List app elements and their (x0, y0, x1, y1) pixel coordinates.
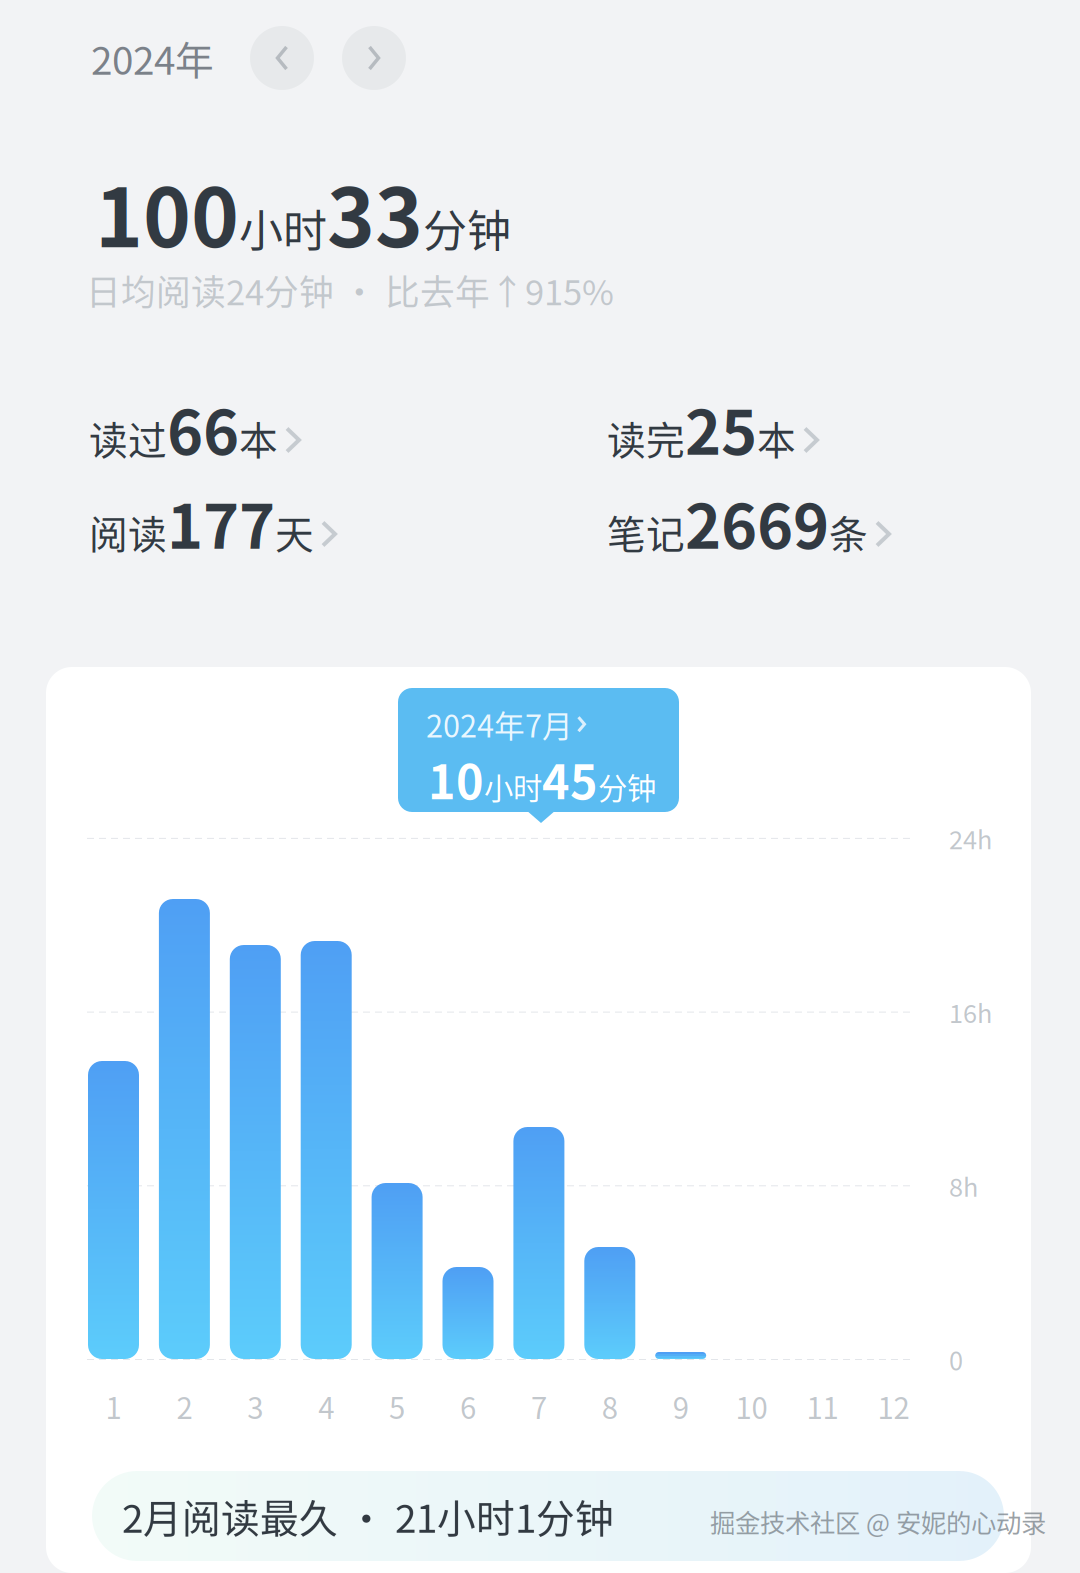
staticText: 读完 (607, 410, 685, 466)
staticText: 45 (542, 745, 598, 813)
staticText: 0 (949, 1341, 963, 1378)
staticText: 177 (167, 478, 275, 566)
staticText: 阅读 (89, 504, 167, 560)
staticText: 7 (531, 1385, 547, 1427)
button[interactable]: 读完 (607, 399, 819, 457)
staticText: 10 (736, 1385, 768, 1427)
staticText: 日均阅读24分钟 · 比去年↑915% (86, 265, 614, 315)
staticText: 5 (389, 1385, 405, 1427)
staticText: 小时 (484, 765, 542, 808)
staticText: 11 (806, 1385, 838, 1427)
staticText: 100 (95, 153, 239, 271)
staticText: 小时 (239, 196, 327, 260)
staticText: 6 (460, 1385, 476, 1427)
staticText: 25 (685, 384, 757, 472)
staticText: 66 (167, 384, 239, 472)
staticText: 12 (877, 1385, 909, 1427)
staticText: 2669 (685, 478, 829, 566)
staticText: 24h (949, 820, 992, 857)
staticText: 掘金技术社区 @ 安妮的心动录 (710, 1503, 1046, 1540)
staticText: 9 (673, 1385, 689, 1427)
button[interactable]: 下一年 (342, 26, 406, 90)
staticText: 1 (105, 1385, 121, 1427)
button[interactable]: 笔记 (607, 493, 891, 551)
staticText: 2024年7月 (426, 702, 573, 746)
staticText: 16h (949, 994, 992, 1030)
button[interactable]: 2月阅读最久 · 21小时1分钟 (92, 1471, 1004, 1561)
staticText: 笔记 (607, 504, 685, 560)
staticText: 2024年 (91, 30, 214, 86)
staticText: 10 (428, 745, 484, 813)
staticText: 分钟 (423, 196, 511, 260)
button[interactable]: 2024年7月 (398, 688, 679, 825)
staticText: 8h (949, 1167, 978, 1204)
staticText: 天 (275, 504, 314, 560)
staticText: 8 (602, 1385, 618, 1427)
staticText: 读过 (89, 410, 167, 466)
staticText: 分钟 (598, 765, 656, 808)
button[interactable]: 上一年 (250, 26, 314, 90)
button[interactable]: 读过 (89, 399, 301, 457)
staticText: 33 (327, 153, 423, 271)
staticText: 4 (318, 1385, 334, 1427)
staticText: 2 (176, 1385, 192, 1427)
staticText: 2月阅读最久 · 21小时1分钟 (122, 1488, 614, 1544)
button[interactable]: 阅读 (89, 493, 337, 551)
staticText: 本 (239, 410, 278, 466)
staticText: 本 (757, 410, 796, 466)
staticText: 条 (829, 504, 868, 560)
staticText: 3 (247, 1385, 263, 1427)
